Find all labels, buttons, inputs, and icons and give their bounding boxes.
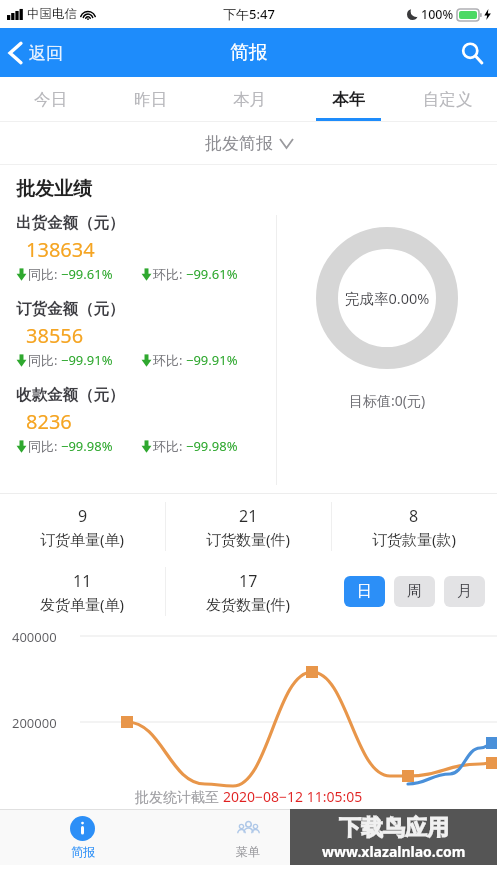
staticText: 11	[73, 570, 92, 592]
staticText: www.xlazalnlao.com	[322, 842, 466, 861]
staticText: 138634	[26, 236, 95, 263]
staticText: 下载鸟应用	[339, 814, 449, 842]
button[interactable]: 11	[0, 559, 165, 624]
staticText: 今日	[34, 89, 67, 110]
staticText: 返回	[29, 43, 63, 64]
staticText: 月	[457, 582, 472, 601]
staticText: 环比:	[153, 437, 186, 455]
button[interactable]: 返回	[0, 36, 75, 70]
staticText: 完成率0.00%	[345, 288, 430, 308]
staticText: 200000	[12, 714, 57, 732]
staticText: 100%	[421, 6, 454, 23]
staticText: 8236	[26, 408, 72, 435]
staticText: 38556	[26, 322, 84, 349]
staticText: 订货款量(款)	[372, 529, 457, 549]
staticText: −99.98%	[61, 437, 113, 455]
staticText: 批发业绩	[16, 177, 92, 201]
staticText: 21	[239, 505, 258, 527]
button[interactable]: 简报	[0, 809, 165, 865]
staticText: 简报	[71, 844, 95, 859]
staticText: 8	[409, 505, 419, 527]
staticText: 400000	[12, 628, 57, 646]
staticText: 中国电信	[27, 6, 77, 22]
button[interactable]: 日	[344, 576, 385, 607]
staticText: 9	[78, 505, 88, 527]
button[interactable]: 菜单	[165, 809, 331, 865]
staticText: 本年	[332, 89, 365, 110]
staticText: 同比:	[28, 351, 61, 369]
button[interactable]: 今日	[0, 77, 100, 121]
staticText: 昨日	[134, 89, 167, 110]
staticText: −99.91%	[186, 351, 238, 369]
staticText: −99.98%	[186, 437, 238, 455]
button[interactable]: 月	[444, 576, 485, 607]
button[interactable]: 9	[0, 494, 165, 559]
staticText: 收款金额（元）	[16, 385, 125, 405]
staticText: 菜单	[236, 844, 260, 859]
button[interactable]: 搜索	[447, 32, 497, 74]
staticText: 批发统计截至	[135, 787, 223, 806]
button[interactable]: 17	[165, 559, 331, 624]
staticText: 订货数量(件)	[206, 529, 291, 549]
staticText: 17	[239, 570, 258, 592]
staticText: 下午5:47	[223, 5, 275, 23]
button[interactable]: 周	[394, 576, 435, 607]
button[interactable]: 本年	[299, 77, 398, 121]
staticText: 订货单量(单)	[40, 529, 125, 549]
button[interactable]: 昨日	[100, 77, 200, 121]
button[interactable]: 本月	[200, 77, 299, 121]
staticText: 周	[407, 582, 422, 601]
button[interactable]: 21	[165, 494, 331, 559]
staticText: 简报	[230, 41, 268, 65]
staticText: −99.61%	[61, 265, 113, 283]
staticText: 同比:	[28, 265, 61, 283]
staticText: −99.91%	[61, 351, 113, 369]
staticText: 同比:	[28, 437, 61, 455]
staticText: 出货金额（元）	[16, 213, 125, 233]
staticText: 2020−08−12 11:05:05	[223, 787, 363, 806]
button[interactable]: 8	[331, 494, 497, 559]
staticText: 本月	[233, 89, 266, 110]
button[interactable]: 批发简报	[0, 121, 497, 165]
staticText: 发货数量(件)	[206, 594, 291, 614]
staticText: −99.61%	[186, 265, 238, 283]
staticText: 环比:	[153, 351, 186, 369]
staticText: 自定义	[423, 89, 473, 110]
staticText: 订货金额（元）	[16, 299, 125, 319]
staticText: 环比:	[153, 265, 186, 283]
button[interactable]: 自定义	[398, 77, 497, 121]
staticText: 日	[357, 582, 372, 601]
staticText: 发货单量(单)	[40, 594, 125, 614]
staticText: 批发简报	[205, 133, 273, 154]
staticText: 目标值:0(元)	[349, 391, 426, 410]
